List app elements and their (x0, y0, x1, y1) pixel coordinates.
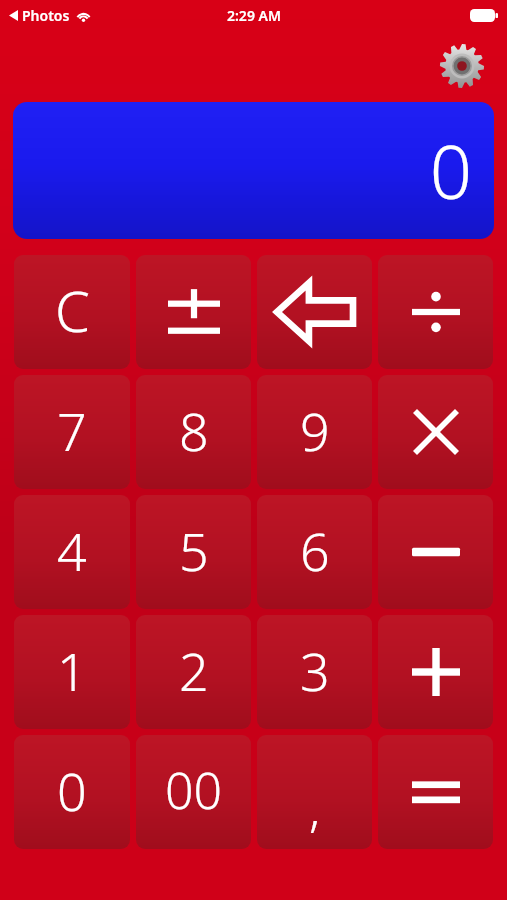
button[interactable]: 4 (14, 495, 130, 609)
button[interactable]: Divide (378, 255, 493, 369)
button[interactable]: 7 (14, 375, 130, 489)
staticText: 4 (57, 515, 87, 586)
staticText: 2:29 AM (227, 6, 281, 25)
staticText: 0 (429, 120, 472, 221)
staticText: 00 (165, 756, 223, 824)
staticText: 5 (179, 515, 209, 586)
button[interactable]: 2 (136, 615, 251, 729)
button[interactable]: Plus minus (136, 255, 251, 369)
staticText: 9 (300, 395, 330, 466)
staticText: , (309, 774, 321, 842)
button[interactable]: Multiply (378, 375, 493, 489)
button[interactable]: 9 (257, 375, 372, 489)
staticText: 6 (300, 515, 330, 586)
staticText: 8 (179, 395, 209, 466)
button[interactable]: 5 (136, 495, 251, 609)
button[interactable]: , (257, 735, 372, 849)
button[interactable]: 0 (14, 735, 130, 849)
staticText: 7 (57, 395, 87, 466)
staticText: 0 (57, 755, 87, 826)
button[interactable]: Minus (378, 495, 493, 609)
staticText: 1 (57, 635, 87, 706)
button[interactable]: 00 (136, 735, 251, 849)
button[interactable]: 8 (136, 375, 251, 489)
staticText: Photos (22, 6, 70, 25)
button[interactable]: C (14, 255, 130, 369)
button[interactable]: 0 (13, 102, 494, 239)
button[interactable]: Plus (378, 615, 493, 729)
staticText: 3 (300, 635, 330, 706)
button[interactable]: 1 (14, 615, 130, 729)
button[interactable]: 6 (257, 495, 372, 609)
button[interactable]: Backspace (257, 255, 372, 369)
button[interactable]: 3 (257, 615, 372, 729)
button[interactable]: Settings (439, 43, 485, 89)
button[interactable]: Equals (378, 735, 493, 849)
staticText: 2 (179, 635, 209, 706)
staticText: C (55, 272, 90, 348)
